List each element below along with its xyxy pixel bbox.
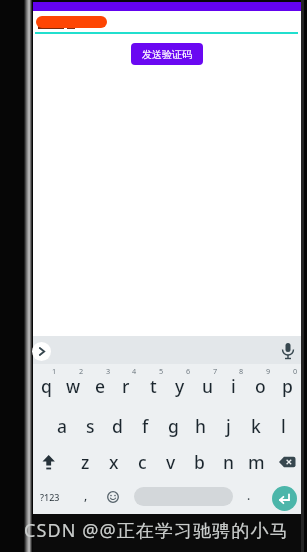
button[interactable]	[272, 486, 297, 511]
staticText: CSDN @@正在学习驰骋的小马	[24, 518, 289, 543]
staticText: h	[195, 414, 206, 438]
staticText: u	[202, 374, 213, 398]
staticText: 7	[213, 366, 218, 376]
button[interactable]: u	[194, 374, 220, 398]
button[interactable]: e	[87, 374, 113, 398]
staticText: ?123	[40, 491, 60, 503]
button[interactable]	[103, 487, 123, 507]
staticText: g	[168, 414, 179, 438]
staticText: 发送验证码	[142, 48, 192, 61]
staticText: m	[248, 450, 265, 474]
button[interactable]: b	[186, 450, 212, 474]
staticText: k	[251, 414, 261, 438]
staticText: y	[175, 374, 185, 398]
staticText: 9	[266, 366, 271, 376]
staticText: a	[57, 414, 68, 438]
staticText: p	[282, 374, 293, 398]
staticText: e	[95, 374, 106, 398]
button[interactable]: c	[129, 450, 155, 474]
staticText: x	[109, 450, 119, 474]
staticText: 8	[239, 366, 244, 376]
staticText: v	[166, 450, 176, 474]
staticText: 6	[186, 366, 191, 376]
button[interactable]: j	[215, 414, 241, 438]
button[interactable]: ?123	[37, 485, 63, 509]
staticText: r	[122, 374, 130, 398]
button[interactable]	[277, 454, 299, 470]
staticText: 1	[52, 366, 57, 376]
staticText: 3	[106, 366, 111, 376]
button[interactable]: z	[72, 450, 98, 474]
button[interactable]: i	[220, 374, 246, 398]
staticText: 5	[159, 366, 164, 376]
button[interactable]: d	[104, 414, 130, 438]
staticText: t	[150, 374, 157, 398]
staticText: f	[142, 414, 149, 438]
staticText: i	[231, 374, 236, 398]
staticText: n	[223, 450, 234, 474]
staticText: w	[66, 374, 81, 398]
button[interactable]	[278, 340, 298, 362]
button[interactable]: q	[33, 374, 59, 398]
staticText: l	[281, 414, 286, 438]
staticText: b	[194, 450, 205, 474]
button[interactable]: h	[187, 414, 213, 438]
staticText: 4	[132, 366, 137, 376]
button[interactable]: t	[140, 374, 166, 398]
button[interactable]: .	[236, 483, 262, 507]
staticText: j	[226, 414, 231, 438]
button[interactable]: g	[160, 414, 186, 438]
staticText: .	[247, 487, 251, 503]
button[interactable]	[32, 342, 51, 361]
button[interactable]: m	[243, 450, 269, 474]
button[interactable]: a	[49, 414, 75, 438]
button[interactable]: p	[274, 374, 300, 398]
button[interactable]: 发送验证码	[131, 43, 203, 65]
staticText: c	[138, 450, 147, 474]
button[interactable]: s	[77, 414, 103, 438]
button[interactable]	[134, 487, 233, 506]
button[interactable]: k	[243, 414, 269, 438]
button[interactable]: v	[158, 450, 184, 474]
staticText: z	[81, 450, 90, 474]
button[interactable]: ,	[73, 483, 99, 507]
button[interactable]: l	[270, 414, 296, 438]
button[interactable]: n	[215, 450, 241, 474]
button[interactable]: r	[113, 374, 139, 398]
staticText: q	[41, 374, 52, 398]
button[interactable]: y	[167, 374, 193, 398]
staticText: d	[112, 414, 123, 438]
button[interactable]: w	[60, 374, 86, 398]
button[interactable]	[38, 452, 60, 472]
staticText: 0	[293, 366, 298, 376]
button[interactable]: o	[247, 374, 273, 398]
staticText: s	[86, 414, 95, 438]
button[interactable]: f	[132, 414, 158, 438]
staticText: 2	[79, 366, 84, 376]
button[interactable]: x	[101, 450, 127, 474]
staticText: o	[255, 374, 266, 398]
staticText: ,	[84, 487, 88, 503]
